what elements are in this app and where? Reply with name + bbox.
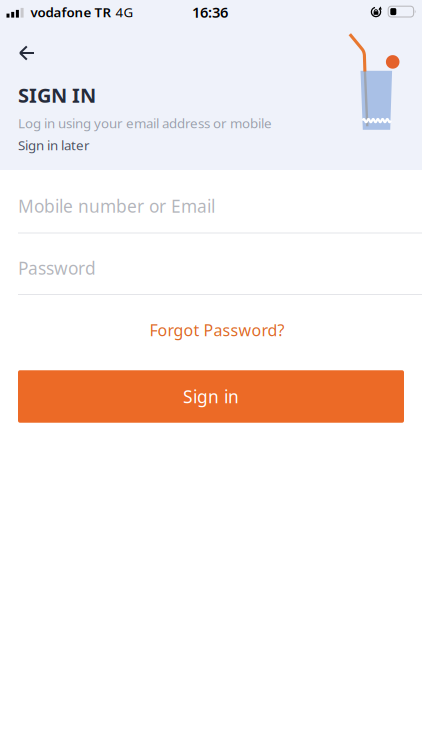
staticText: Password <box>18 256 96 279</box>
staticText: 4G <box>115 3 133 21</box>
staticText: SIGN IN <box>18 82 96 108</box>
button[interactable]: Sign in <box>18 370 404 423</box>
button[interactable]: Sign in later <box>18 136 90 154</box>
button[interactable]: Forgot Password? <box>141 311 292 349</box>
button[interactable]: Password <box>0 239 422 297</box>
staticText: Log in using your email address or mobil… <box>18 114 272 132</box>
staticText: Mobile number or Email <box>18 194 215 217</box>
staticText: Sign in <box>183 385 239 408</box>
button[interactable]: Mobile number or Email <box>0 176 422 236</box>
staticText: vodafone TR <box>30 3 111 21</box>
staticText: 16:36 <box>192 2 228 22</box>
staticText: Forgot Password? <box>149 319 284 341</box>
staticText: Sign in later <box>18 136 90 154</box>
button[interactable]: Back <box>10 43 44 63</box>
